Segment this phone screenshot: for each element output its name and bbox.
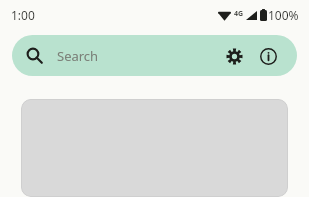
button[interactable]: Settings: [219, 41, 249, 71]
staticText: Search: [57, 47, 219, 65]
staticText: 100%: [268, 7, 299, 23]
staticText: 4G: [234, 9, 244, 19]
button[interactable]: Search: [12, 35, 297, 76]
staticText: 1:00: [11, 7, 35, 23]
button[interactable]: Information: [253, 41, 283, 71]
